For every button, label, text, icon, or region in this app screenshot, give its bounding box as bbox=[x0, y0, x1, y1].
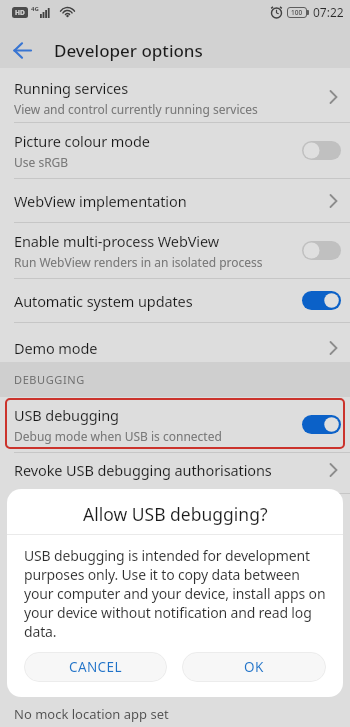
staticText: Revoke USB debugging authorisations bbox=[14, 460, 272, 480]
staticText: DEBUGGING bbox=[14, 372, 85, 387]
button[interactable]: Demo mode bbox=[0, 323, 350, 362]
staticText: Running services bbox=[14, 78, 128, 98]
button[interactable] bbox=[0, 33, 44, 68]
staticText: Run WebView renders in an isolated proce… bbox=[14, 254, 263, 270]
staticText: Demo mode bbox=[14, 338, 98, 358]
staticText: View and control currently running servi… bbox=[14, 101, 258, 117]
staticText: Use sRGB bbox=[14, 154, 69, 170]
staticText: HD bbox=[15, 8, 25, 17]
staticText: Developer options bbox=[54, 39, 203, 62]
staticText: CANCEL bbox=[69, 658, 122, 676]
staticText: 100 bbox=[291, 8, 303, 17]
staticText: 4G bbox=[31, 5, 39, 13]
button[interactable]: OK bbox=[182, 652, 326, 682]
button[interactable]: Revoke USB debugging authorisations bbox=[0, 453, 350, 493]
button[interactable]: CANCEL bbox=[24, 652, 167, 682]
staticText: Debug mode when USB is connected bbox=[14, 428, 222, 444]
staticText: 07:22 bbox=[313, 4, 344, 20]
staticText: Automatic system updates bbox=[14, 291, 193, 311]
staticText: OK bbox=[244, 658, 264, 676]
button[interactable]: Picture colour mode bbox=[0, 123, 350, 178]
staticText: No mock location app set bbox=[14, 705, 169, 723]
button[interactable]: WebView implementation bbox=[0, 179, 350, 222]
button[interactable]: Automatic system updates bbox=[0, 279, 350, 322]
staticText: USB debugging is intended for developmen… bbox=[24, 546, 326, 641]
staticText: Enable multi-process WebView bbox=[14, 231, 220, 251]
staticText: Picture colour mode bbox=[14, 131, 150, 151]
staticText: USB debugging bbox=[14, 405, 119, 425]
staticText: Allow USB debugging? bbox=[83, 502, 268, 526]
staticText: WebView implementation bbox=[14, 191, 187, 211]
button[interactable]: Running services bbox=[0, 68, 350, 122]
button[interactable]: USB debugging bbox=[0, 397, 350, 452]
button[interactable]: Enable multi-process WebView bbox=[0, 223, 350, 278]
